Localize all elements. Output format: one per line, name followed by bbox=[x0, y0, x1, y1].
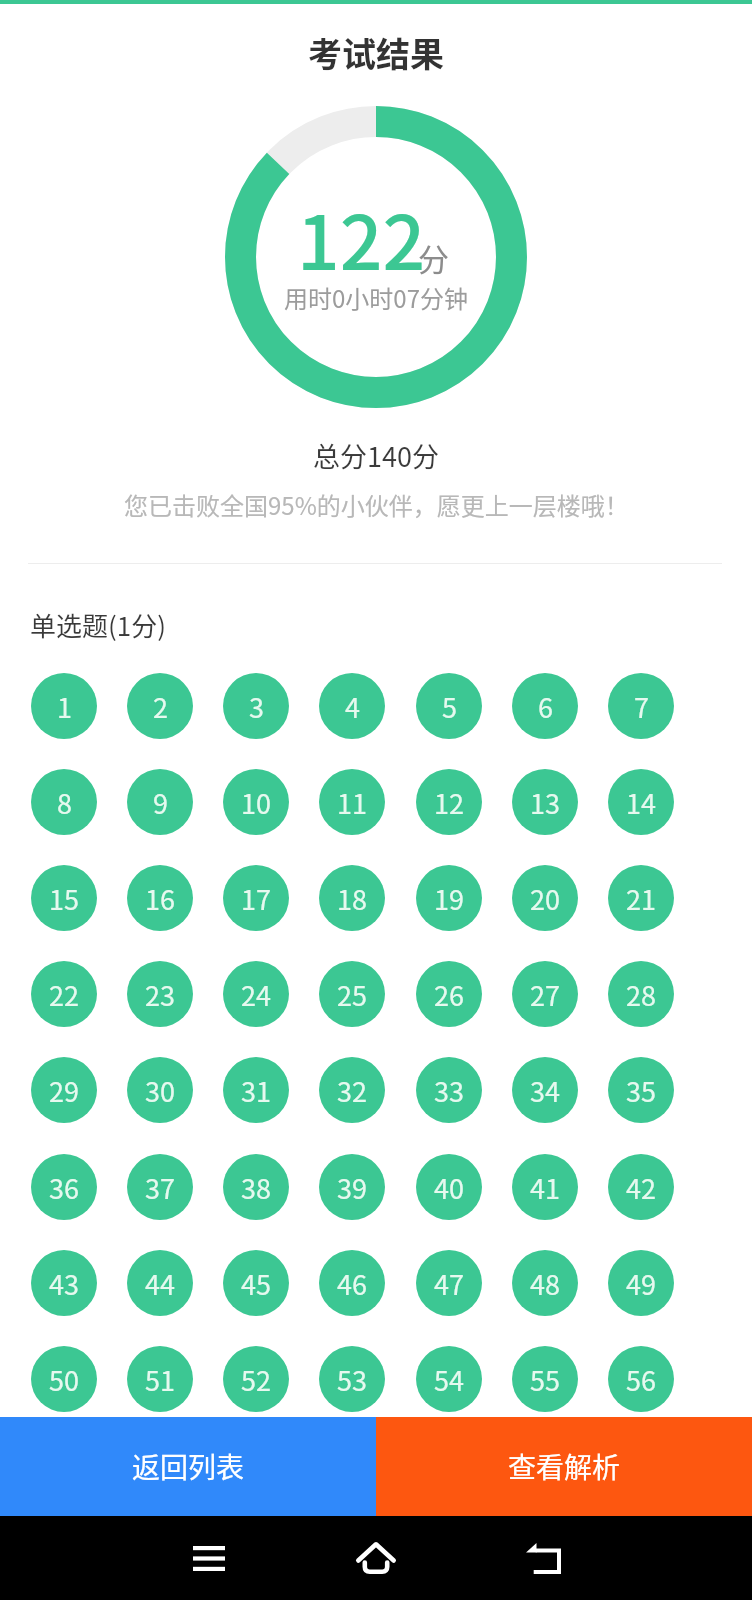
button[interactable]: 38 bbox=[223, 1154, 289, 1220]
staticText: 45 bbox=[241, 1264, 271, 1303]
staticText: 13 bbox=[530, 783, 560, 822]
button[interactable]: 查看解析 bbox=[376, 1417, 752, 1516]
button[interactable]: 25 bbox=[319, 961, 385, 1027]
button[interactable]: 返回列表 bbox=[0, 1417, 376, 1516]
button[interactable]: 11 bbox=[319, 769, 385, 835]
button[interactable]: 18 bbox=[319, 865, 385, 931]
button[interactable]: 7 bbox=[608, 673, 674, 739]
button[interactable]: 8 bbox=[31, 769, 97, 835]
button[interactable]: 45 bbox=[223, 1250, 289, 1316]
button[interactable]: 14 bbox=[608, 769, 674, 835]
staticText: 38 bbox=[241, 1168, 271, 1207]
staticText: 14 bbox=[626, 783, 656, 822]
staticText: 41 bbox=[530, 1168, 560, 1207]
button[interactable]: 48 bbox=[512, 1250, 578, 1316]
button[interactable]: 49 bbox=[608, 1250, 674, 1316]
staticText: 30 bbox=[145, 1071, 175, 1110]
staticText: 122 bbox=[297, 183, 426, 292]
staticText: 50 bbox=[49, 1360, 79, 1399]
button[interactable]: 41 bbox=[512, 1154, 578, 1220]
button[interactable]: 42 bbox=[608, 1154, 674, 1220]
staticText: 52 bbox=[241, 1360, 271, 1399]
staticText: 8 bbox=[57, 783, 72, 822]
button[interactable]: 37 bbox=[127, 1154, 193, 1220]
staticText: 22 bbox=[49, 975, 79, 1014]
button[interactable]: 9 bbox=[127, 769, 193, 835]
button[interactable]: 46 bbox=[319, 1250, 385, 1316]
button[interactable]: 51 bbox=[127, 1346, 193, 1412]
button[interactable]: 26 bbox=[416, 961, 482, 1027]
button[interactable]: 4 bbox=[319, 673, 385, 739]
button[interactable]: 24 bbox=[223, 961, 289, 1027]
staticText: 31 bbox=[241, 1071, 271, 1110]
button[interactable]: 27 bbox=[512, 961, 578, 1027]
button[interactable]: 33 bbox=[416, 1057, 482, 1123]
button[interactable]: 32 bbox=[319, 1057, 385, 1123]
staticText: 分 bbox=[418, 235, 449, 280]
staticText: 56 bbox=[626, 1360, 656, 1399]
button[interactable]: Home bbox=[334, 1516, 418, 1600]
button[interactable]: 53 bbox=[319, 1346, 385, 1412]
staticText: 用时0小时07分钟 bbox=[284, 280, 468, 315]
staticText: 23 bbox=[145, 975, 175, 1014]
button[interactable]: 1 bbox=[31, 673, 97, 739]
staticText: 1 bbox=[57, 687, 72, 726]
button[interactable]: 28 bbox=[608, 961, 674, 1027]
button[interactable]: 47 bbox=[416, 1250, 482, 1316]
button[interactable]: 21 bbox=[608, 865, 674, 931]
staticText: 54 bbox=[434, 1360, 464, 1399]
staticText: 18 bbox=[337, 879, 367, 918]
button[interactable]: Back bbox=[501, 1516, 585, 1600]
button[interactable]: 5 bbox=[416, 673, 482, 739]
button[interactable]: 23 bbox=[127, 961, 193, 1027]
button[interactable]: 19 bbox=[416, 865, 482, 931]
staticText: 总分140分 bbox=[313, 436, 439, 475]
button[interactable]: 40 bbox=[416, 1154, 482, 1220]
button[interactable]: 6 bbox=[512, 673, 578, 739]
staticText: 26 bbox=[434, 975, 464, 1014]
button[interactable]: 54 bbox=[416, 1346, 482, 1412]
staticText: 43 bbox=[49, 1264, 79, 1303]
button[interactable]: 50 bbox=[31, 1346, 97, 1412]
button[interactable]: Recent apps bbox=[167, 1516, 251, 1600]
staticText: 39 bbox=[337, 1168, 367, 1207]
staticText: 21 bbox=[626, 879, 656, 918]
button[interactable]: 20 bbox=[512, 865, 578, 931]
button[interactable]: 56 bbox=[608, 1346, 674, 1412]
staticText: 28 bbox=[626, 975, 656, 1014]
button[interactable]: 31 bbox=[223, 1057, 289, 1123]
staticText: 6 bbox=[538, 687, 553, 726]
staticText: 53 bbox=[337, 1360, 367, 1399]
staticText: 49 bbox=[626, 1264, 656, 1303]
staticText: 11 bbox=[337, 783, 367, 822]
button[interactable]: 22 bbox=[31, 961, 97, 1027]
button[interactable]: 29 bbox=[31, 1057, 97, 1123]
staticText: 查看解析 bbox=[508, 1446, 621, 1487]
staticText: 44 bbox=[145, 1264, 175, 1303]
button[interactable]: 44 bbox=[127, 1250, 193, 1316]
staticText: 25 bbox=[337, 975, 367, 1014]
button[interactable]: 55 bbox=[512, 1346, 578, 1412]
button[interactable]: 12 bbox=[416, 769, 482, 835]
staticText: 37 bbox=[145, 1168, 175, 1207]
staticText: 20 bbox=[530, 879, 560, 918]
button[interactable]: 17 bbox=[223, 865, 289, 931]
button[interactable]: 10 bbox=[223, 769, 289, 835]
button[interactable]: 15 bbox=[31, 865, 97, 931]
button[interactable]: 52 bbox=[223, 1346, 289, 1412]
button[interactable]: 2 bbox=[127, 673, 193, 739]
button[interactable]: 39 bbox=[319, 1154, 385, 1220]
staticText: 5 bbox=[442, 687, 457, 726]
staticText: 36 bbox=[49, 1168, 79, 1207]
button[interactable]: 36 bbox=[31, 1154, 97, 1220]
button[interactable]: 13 bbox=[512, 769, 578, 835]
button[interactable]: 3 bbox=[223, 673, 289, 739]
button[interactable]: 34 bbox=[512, 1057, 578, 1123]
button[interactable]: 35 bbox=[608, 1057, 674, 1123]
staticText: 您已击败全国95%的小伙伴，愿更上一层楼哦！ bbox=[124, 487, 629, 522]
button[interactable]: 30 bbox=[127, 1057, 193, 1123]
button[interactable]: 16 bbox=[127, 865, 193, 931]
staticText: 46 bbox=[337, 1264, 367, 1303]
button[interactable]: 43 bbox=[31, 1250, 97, 1316]
staticText: 27 bbox=[530, 975, 560, 1014]
